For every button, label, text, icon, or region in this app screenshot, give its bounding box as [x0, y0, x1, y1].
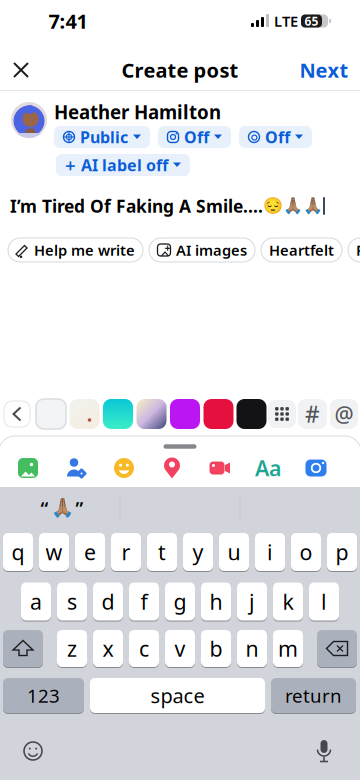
button[interactable]: z: [57, 629, 87, 667]
staticText: y: [192, 538, 203, 566]
button[interactable]: Mention: [330, 399, 358, 429]
staticText: Create post: [121, 57, 238, 83]
staticText: o: [299, 538, 312, 566]
button[interactable]: b: [201, 629, 231, 667]
button[interactable]: Shift: [3, 629, 43, 667]
button[interactable]: g: [165, 582, 195, 621]
staticText: space: [150, 682, 204, 709]
staticText: l: [321, 587, 327, 616]
button[interactable]: return: [271, 677, 356, 713]
button[interactable]: Red background: [203, 399, 233, 429]
staticText: I’m Tired Of Faking A Smile....: [10, 194, 263, 217]
staticText: h: [209, 587, 222, 616]
button[interactable]: k: [273, 582, 303, 621]
staticText: Fix grammar: [356, 240, 360, 260]
button[interactable]: “: [7, 491, 117, 525]
staticText: Off: [265, 126, 290, 148]
button[interactable]: r: [111, 532, 141, 571]
button[interactable]: More backgrounds: [268, 400, 296, 428]
staticText: AI images: [176, 240, 247, 260]
button[interactable]: c: [129, 629, 159, 667]
button[interactable]: x: [93, 629, 123, 667]
staticText: 🙏🏽: [50, 497, 73, 519]
button[interactable]: h: [201, 582, 231, 621]
button[interactable]: e: [75, 532, 105, 571]
button[interactable]: 123: [3, 677, 84, 713]
button[interactable]: Camera: [296, 450, 336, 486]
button[interactable]: l: [309, 582, 339, 621]
button[interactable]: Delete: [317, 629, 357, 667]
staticText: e: [84, 538, 96, 566]
staticText: m: [278, 634, 298, 663]
button[interactable]: f: [129, 582, 159, 621]
button[interactable]: Help me write: [8, 238, 143, 262]
button[interactable]: Pastel background: [136, 399, 166, 429]
staticText: Public: [80, 126, 128, 148]
staticText: LTE: [274, 11, 298, 31]
staticText: 65: [304, 13, 318, 29]
button[interactable]: Background color: [248, 450, 288, 486]
button[interactable]: Purple background: [170, 399, 200, 429]
button[interactable]: Heartfelt: [261, 238, 342, 262]
staticText: Heartfelt: [269, 240, 334, 260]
staticText: c: [139, 634, 149, 663]
button[interactable]: j: [237, 582, 267, 621]
button[interactable]: +: [149, 238, 255, 262]
button[interactable]: Next: [296, 52, 352, 88]
button[interactable]: +: [56, 154, 190, 176]
button[interactable]: Off: [239, 126, 312, 148]
button[interactable]: Teal background: [103, 399, 133, 429]
staticText: v: [174, 634, 185, 663]
staticText: s: [67, 587, 77, 616]
staticText: Off: [184, 126, 209, 148]
button[interactable]: Public: [54, 126, 150, 148]
button[interactable]: Photo or video: [8, 450, 48, 486]
button[interactable]: w: [39, 532, 69, 571]
button[interactable]: u: [219, 532, 249, 571]
button[interactable]: space: [90, 677, 265, 713]
staticText: a: [30, 587, 42, 616]
staticText: 7:41: [48, 8, 87, 34]
staticText: “: [40, 496, 48, 520]
button[interactable]: o: [291, 532, 321, 571]
button[interactable]: q: [3, 532, 33, 571]
staticText: q: [11, 538, 24, 566]
button[interactable]: Emoji: [15, 736, 51, 766]
button[interactable]: Check in: [152, 450, 192, 486]
button[interactable]: Tag people: [56, 450, 96, 486]
button[interactable]: Off: [158, 126, 231, 148]
staticText: x: [102, 634, 113, 663]
button[interactable]: a: [21, 582, 51, 621]
staticText: f: [140, 587, 147, 616]
button[interactable]: m: [273, 629, 303, 667]
button[interactable]: n: [237, 629, 267, 667]
button[interactable]: d: [93, 582, 123, 621]
staticText: 😔🙏🏽🙏🏽: [263, 197, 323, 215]
staticText: Help me write: [34, 240, 135, 260]
button[interactable]: i: [255, 532, 285, 571]
button[interactable]: y: [183, 532, 213, 571]
staticText: return: [285, 683, 342, 708]
button[interactable]: s: [57, 582, 87, 621]
staticText: t: [158, 538, 166, 566]
button[interactable]: t: [147, 532, 177, 571]
button[interactable]: No background: [36, 399, 66, 429]
button[interactable]: Flower background: [69, 399, 99, 429]
staticText: #: [305, 399, 320, 429]
button[interactable]: Hide backgrounds: [4, 401, 30, 427]
staticText: u: [227, 538, 240, 566]
button[interactable]: Feeling or activity: [104, 450, 144, 486]
button[interactable]: Hashtag: [298, 399, 327, 429]
button[interactable]: Dictation: [309, 736, 339, 766]
button[interactable]: Live video: [200, 450, 240, 486]
button[interactable]: Fix grammar: [348, 238, 360, 262]
button[interactable]: v: [165, 629, 195, 667]
staticText: p: [335, 538, 348, 566]
button[interactable]: Black background: [236, 399, 266, 429]
staticText: +: [164, 240, 170, 255]
button[interactable]: Close: [3, 52, 39, 88]
button[interactable]: p: [327, 532, 357, 571]
staticText: k: [282, 587, 293, 616]
staticText: z: [67, 634, 77, 663]
staticText: g: [173, 587, 186, 616]
